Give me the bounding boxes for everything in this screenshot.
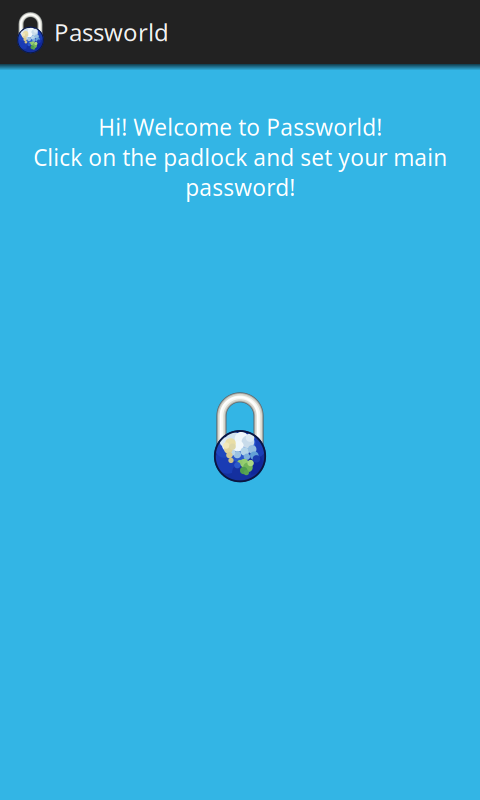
staticText: Hi! Welcome to Passworld! Click on the p… xyxy=(33,112,447,202)
staticText: Passworld xyxy=(54,16,169,48)
button[interactable]: Set main password xyxy=(213,391,266,482)
